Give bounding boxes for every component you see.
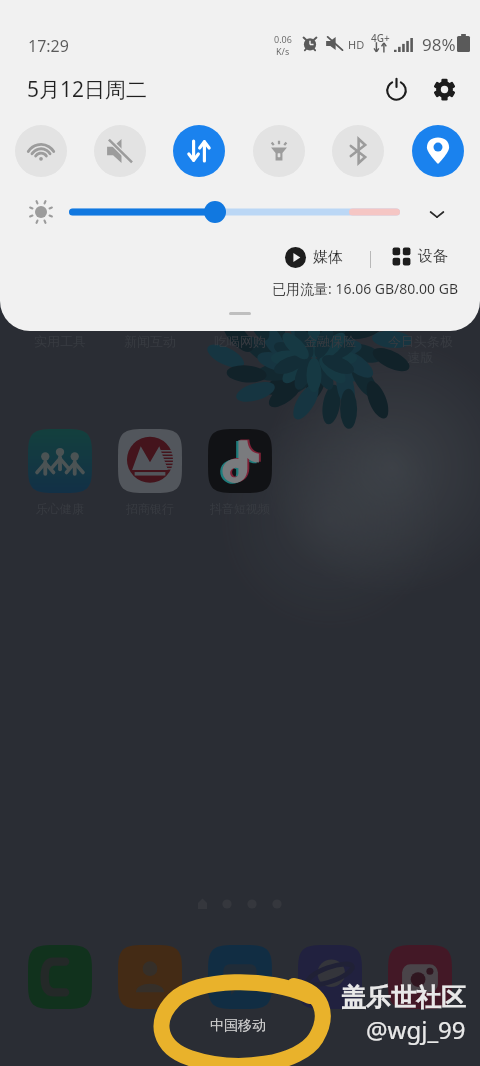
- staticText: 媒体: [313, 248, 343, 267]
- staticText: @wgj_99: [366, 1013, 466, 1046]
- staticText: 金融保险: [304, 333, 356, 349]
- button[interactable]: Brightness: [69, 202, 400, 222]
- button[interactable]: App: [28, 945, 92, 1009]
- button[interactable]: Flashlight: [253, 125, 305, 177]
- staticText: 招商银行: [126, 501, 174, 516]
- button[interactable]: Mobile data: [173, 125, 225, 177]
- staticText: 已用流量: 16.06 GB/80.00 GB: [272, 279, 459, 298]
- staticText: 吃喝网购: [214, 333, 266, 349]
- button[interactable]: App: [298, 945, 362, 1009]
- button[interactable]: App: [388, 945, 452, 1009]
- staticText: 盖乐世社区: [341, 982, 466, 1013]
- staticText: 抖音短视频: [210, 501, 270, 516]
- button[interactable]: Bluetooth: [332, 125, 384, 177]
- staticText: 0.06: [274, 33, 292, 45]
- staticText: 5月12日周二: [27, 75, 148, 104]
- button[interactable]: Location: [412, 125, 464, 177]
- button[interactable]: 乐心健康: [28, 429, 92, 493]
- staticText: 98%: [422, 33, 456, 56]
- staticText: 设备: [418, 247, 448, 266]
- button[interactable]: 设备: [388, 243, 452, 270]
- staticText: 17:29: [28, 35, 69, 57]
- button[interactable]: App: [208, 945, 272, 1009]
- staticText: K/s: [276, 45, 290, 57]
- staticText: 今日头条极 速版: [388, 333, 453, 366]
- button[interactable]: Wi-Fi: [15, 125, 67, 177]
- button[interactable]: Expand: [417, 194, 457, 234]
- staticText: 4G+: [371, 31, 390, 45]
- staticText: 实用工具: [34, 333, 86, 349]
- button[interactable]: Settings: [422, 67, 466, 111]
- button[interactable]: 抖音短视频: [208, 429, 272, 493]
- staticText: HD: [348, 37, 365, 52]
- staticText: 乐心健康: [36, 501, 84, 516]
- button[interactable]: 招商银行: [118, 429, 182, 493]
- staticText: 中国移动: [210, 1017, 266, 1035]
- button[interactable]: Mute: [94, 125, 146, 177]
- button[interactable]: Power: [374, 67, 418, 111]
- button[interactable]: App: [118, 945, 182, 1009]
- button[interactable]: 媒体: [281, 243, 347, 272]
- staticText: 新闻互动: [124, 333, 176, 349]
